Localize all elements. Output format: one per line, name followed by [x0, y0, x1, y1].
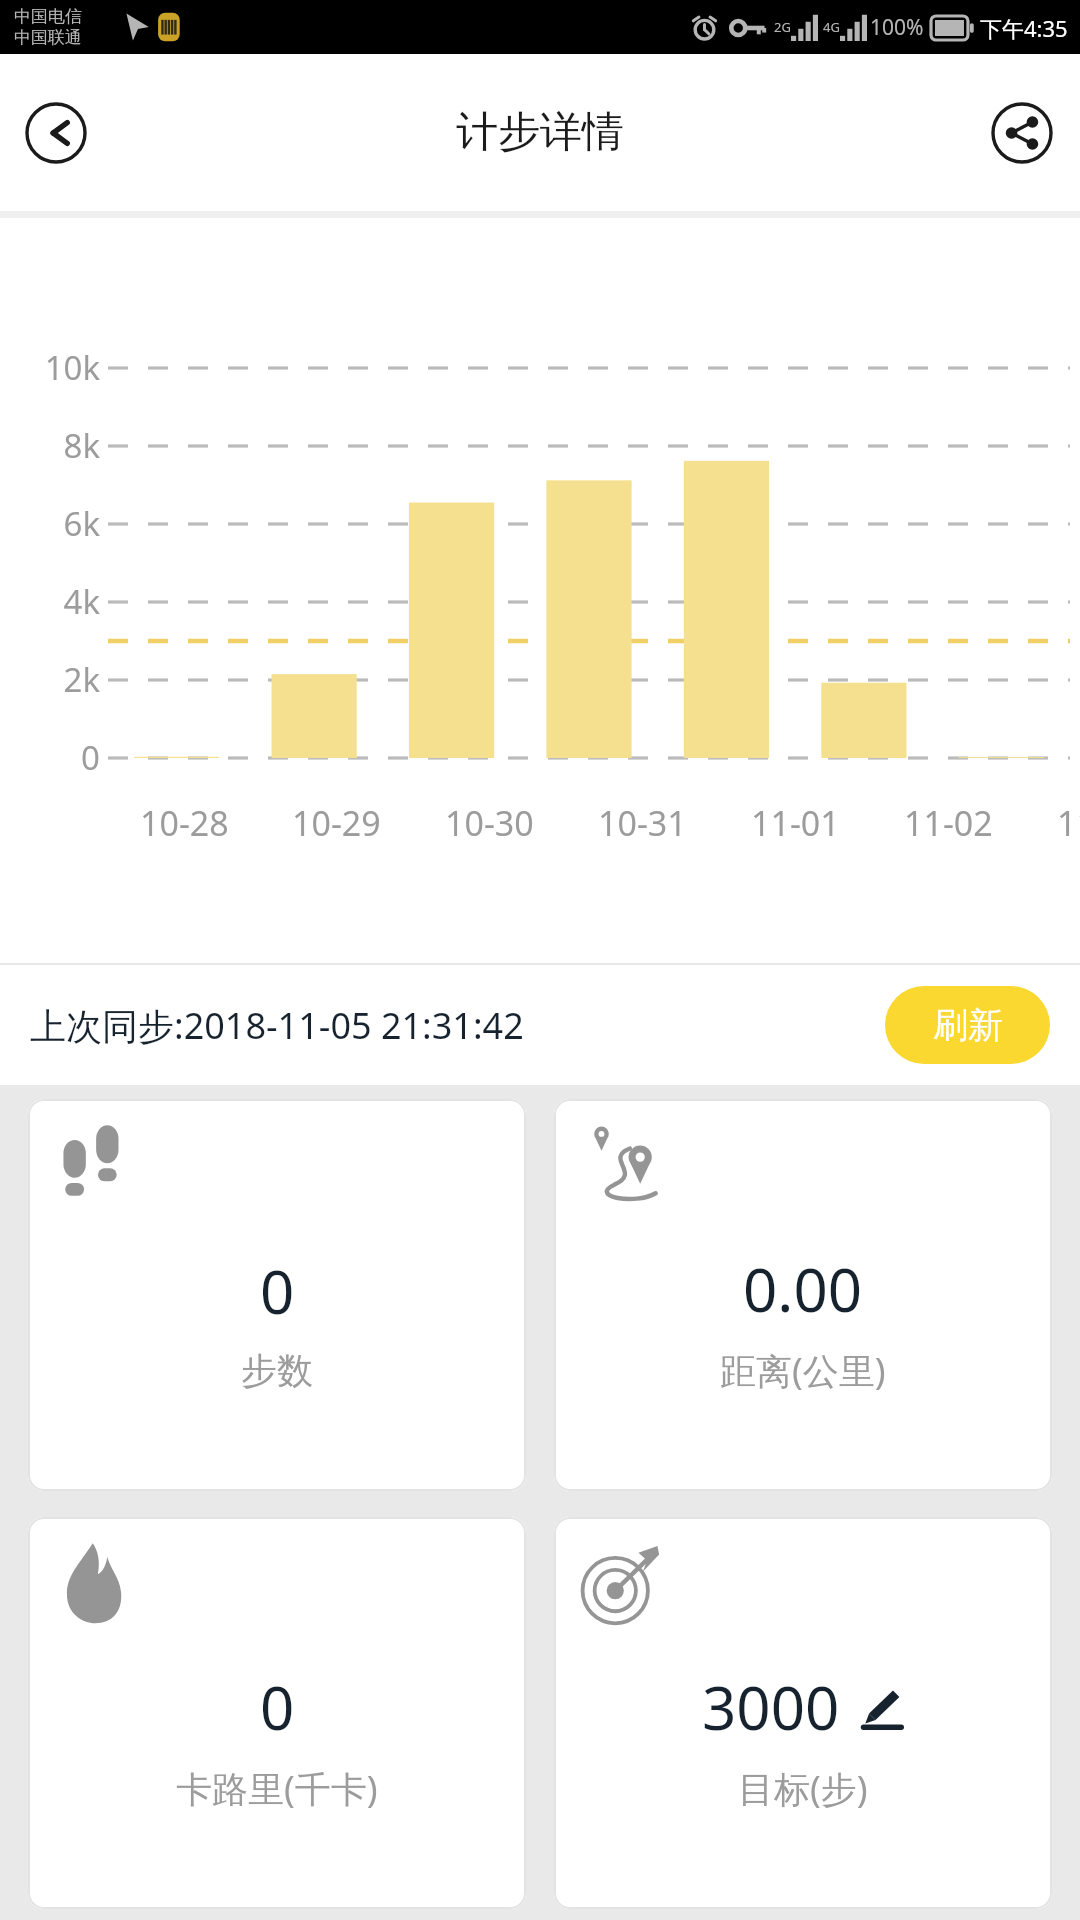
staticText: 中国联通	[14, 27, 82, 48]
staticText: 11-01	[751, 800, 840, 846]
staticText: 下午4:35	[980, 13, 1068, 43]
staticText: 0	[28, 735, 100, 780]
button[interactable]: Back	[20, 97, 92, 169]
button[interactable]: Share	[986, 97, 1058, 169]
staticText: 上次同步:2018-11-05 21:31:42	[30, 1001, 524, 1050]
staticText: 卡路里(千卡)	[176, 1764, 378, 1813]
staticText: 10-28	[140, 800, 229, 846]
staticText: 10-30	[445, 800, 534, 846]
staticText: 100%	[870, 13, 924, 42]
button[interactable]: 刷新	[885, 986, 1050, 1064]
staticText: 目标(步)	[738, 1764, 868, 1813]
staticText: 10-31	[598, 800, 687, 846]
staticText: 计步详情	[456, 106, 624, 159]
staticText: 3000	[702, 1666, 840, 1748]
staticText: 刷新	[933, 1003, 1003, 1047]
staticText: 8k	[28, 423, 100, 468]
button[interactable]: 3000	[554, 1517, 1052, 1909]
staticText: 10-29	[292, 800, 381, 846]
staticText: 中国电信	[14, 6, 82, 27]
staticText: 6k	[28, 501, 100, 546]
button[interactable]: 0	[28, 1517, 526, 1909]
staticText: 步数	[241, 1348, 313, 1393]
staticText: 距离(公里)	[720, 1346, 886, 1395]
staticText: 2k	[28, 657, 100, 702]
staticText: 2G	[774, 18, 791, 36]
staticText: 4G	[823, 18, 840, 36]
button[interactable]: 0.00	[554, 1099, 1052, 1491]
staticText: 4k	[28, 579, 100, 624]
staticText: 0	[260, 1666, 295, 1748]
staticText: 11-02	[904, 800, 993, 846]
staticText: 0	[260, 1250, 295, 1332]
staticText: 10k	[28, 345, 100, 390]
other: Edit goal	[858, 1684, 904, 1730]
button[interactable]: 0	[28, 1099, 526, 1491]
staticText: 0.00	[743, 1248, 863, 1330]
staticText: 11-03	[1057, 800, 1080, 846]
